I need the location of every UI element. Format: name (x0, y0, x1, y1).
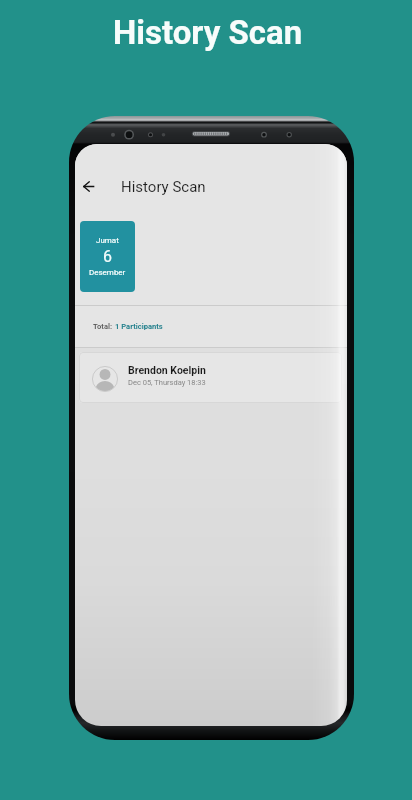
staticText: Total: (93, 322, 115, 331)
button[interactable]: Back (76, 173, 102, 199)
staticText: 6 (103, 247, 112, 266)
staticText: 1 Participants (115, 322, 163, 331)
staticText: Brendon Koelpin (128, 364, 206, 376)
staticText: Jumat (96, 236, 119, 245)
staticText: Dec 05, Thursday 18:33 (128, 378, 206, 387)
button[interactable]: Brendon Koelpin (79, 352, 342, 403)
button[interactable]: Total: (75, 306, 347, 347)
staticText: History Scan (113, 13, 303, 52)
button[interactable]: Jumat (80, 221, 135, 292)
staticText: Desember (89, 268, 126, 277)
staticText: History Scan (121, 178, 206, 196)
